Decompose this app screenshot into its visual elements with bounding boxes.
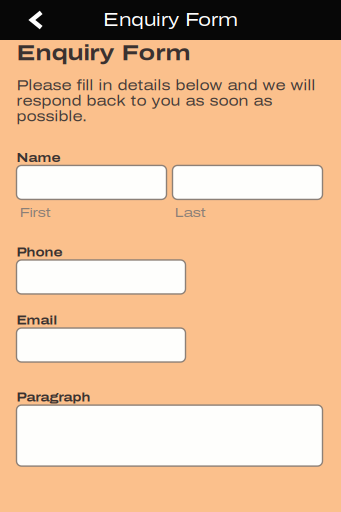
- staticText: Please fill in details below and we will…: [16, 78, 315, 124]
- staticText: Email: [16, 314, 57, 327]
- button[interactable]: Email: [16, 328, 185, 362]
- button[interactable]: First name: [16, 165, 166, 199]
- staticText: Enquiry Form: [16, 41, 190, 65]
- button[interactable]: Paragraph: [16, 405, 322, 466]
- button[interactable]: Phone: [16, 260, 185, 294]
- staticText: First: [19, 205, 50, 220]
- button[interactable]: Last name: [172, 165, 322, 199]
- button[interactable]: Back: [0, 0, 73, 40]
- staticText: Name: [16, 151, 60, 164]
- staticText: Enquiry Form: [103, 10, 238, 30]
- staticText: Last: [174, 205, 205, 220]
- staticText: Phone: [16, 246, 62, 259]
- staticText: Paragraph: [16, 391, 90, 404]
